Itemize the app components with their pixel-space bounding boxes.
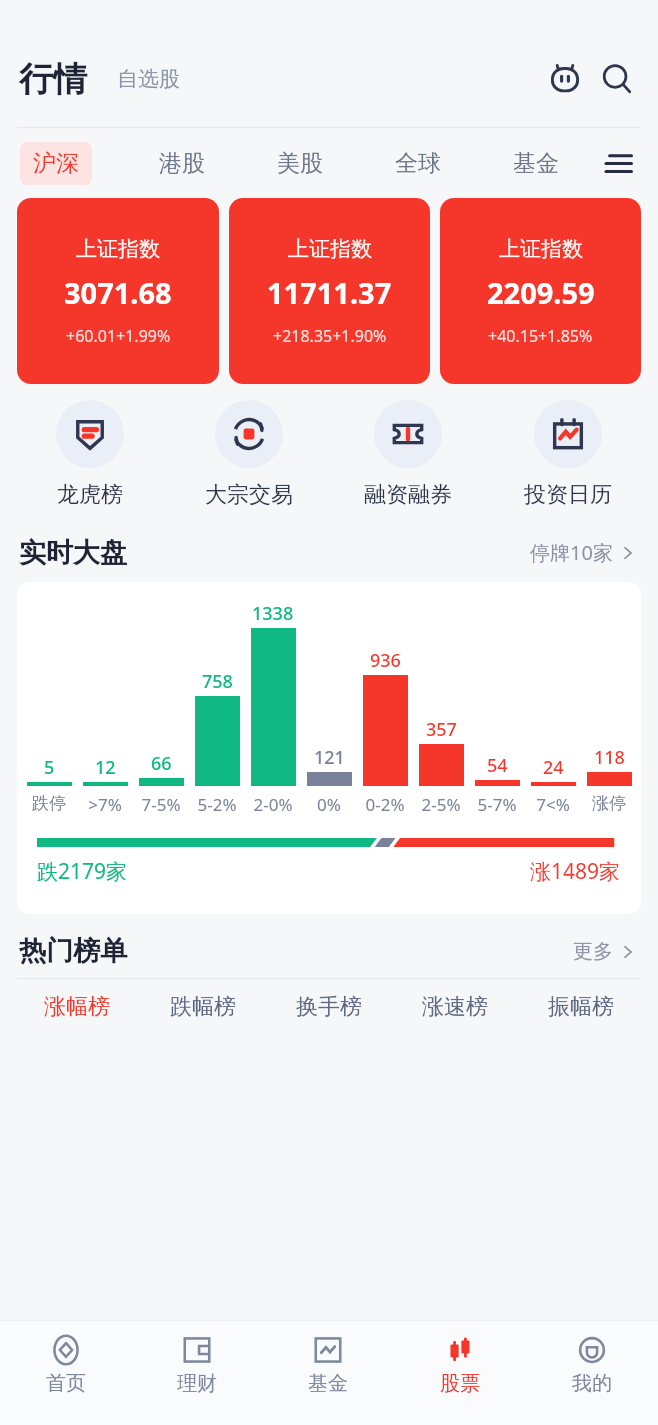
staticText: 跌2179家 [37,857,128,886]
button[interactable]: 停牌10家 [526,535,639,570]
staticText: 2-5% [413,793,469,816]
button[interactable]: 股票 [394,1321,526,1396]
button[interactable]: Search [595,57,639,101]
button[interactable]: 振幅榜 [518,993,644,1021]
staticText: 自选股 [117,66,180,92]
staticText: 港股 [159,149,205,178]
staticText: 大宗交易 [205,481,293,509]
button[interactable]: 首页 [0,1321,131,1396]
staticText: 跌停 [21,793,77,814]
button[interactable]: 5 [17,582,641,914]
staticText: 理财 [177,1371,217,1396]
button[interactable]: 沪深 [20,142,92,185]
staticText: 龙虎榜 [57,481,123,509]
staticText: 跌幅榜 [170,993,236,1021]
staticText: 股票 [440,1371,480,1396]
staticText: 5 [44,755,55,780]
staticText: 行情 [19,58,87,101]
button[interactable]: 更多 [569,935,639,968]
button[interactable]: 自选股 [113,62,184,96]
button[interactable]: 跌幅榜 [140,993,266,1021]
button[interactable]: 涨幅榜 [14,993,140,1021]
button[interactable]: 港股 [155,142,209,185]
staticText: 投资日历 [524,481,612,509]
staticText: 振幅榜 [548,993,614,1021]
button[interactable]: 涨速榜 [392,993,518,1021]
staticText: >7% [77,793,133,816]
staticText: 66 [151,751,172,776]
button[interactable]: 投资日历 [488,396,648,513]
staticText: 0% [301,793,357,816]
staticText: 上证指数 [499,236,583,262]
staticText: 11711.37 [267,273,392,312]
staticText: 5-7% [469,793,525,816]
button[interactable]: 全球 [391,142,445,185]
staticText: 5-2% [189,793,245,816]
staticText: 121 [314,745,345,770]
button[interactable]: 换手榜 [266,993,392,1021]
staticText: 2209.59 [487,273,595,312]
staticText: 更多 [573,939,613,964]
staticText: 全球 [395,149,441,178]
button[interactable]: 上证指数 [440,198,641,384]
staticText: 美股 [277,149,323,178]
button[interactable]: 大宗交易 [169,396,328,513]
staticText: +218.35+1.90% [273,325,387,347]
staticText: 沪深 [33,149,79,178]
button[interactable]: Menu [598,143,638,183]
staticText: 热门榜单 [19,934,127,968]
staticText: 上证指数 [76,236,160,262]
staticText: 24 [543,755,564,780]
staticText: 涨幅榜 [44,993,110,1021]
staticText: 基金 [308,1371,348,1396]
staticText: 上证指数 [288,236,372,262]
staticText: 7<% [525,793,581,816]
staticText: 12 [95,755,116,780]
staticText: 涨速榜 [422,993,488,1021]
staticText: 换手榜 [296,993,362,1021]
staticText: 首页 [46,1371,86,1396]
button[interactable]: 基金 [509,142,563,185]
button[interactable]: 理财 [131,1321,262,1396]
staticText: 118 [594,745,625,770]
staticText: 3071.68 [64,273,172,312]
staticText: 融资融券 [364,481,452,509]
staticText: 54 [487,753,508,778]
staticText: 1338 [252,601,294,626]
button[interactable]: 基金 [262,1321,394,1396]
button[interactable]: 我的 [526,1321,658,1396]
staticText: 涨1489家 [530,857,621,886]
staticText: 基金 [513,149,559,178]
staticText: 936 [370,648,401,673]
staticText: 7-5% [133,793,189,816]
staticText: +60.01+1.99% [66,325,171,347]
staticText: +40.15+1.85% [488,325,593,347]
button[interactable]: AI assistant [543,57,587,101]
staticText: 357 [426,717,457,742]
button[interactable]: 上证指数 [229,198,430,384]
button[interactable]: 上证指数 [17,198,219,384]
staticText: 涨停 [581,793,637,814]
button[interactable]: 龙虎榜 [10,396,169,513]
staticText: 我的 [572,1371,612,1396]
staticText: 实时大盘 [19,536,127,570]
button[interactable]: 融资融券 [328,396,488,513]
staticText: 0-2% [357,793,413,816]
staticText: 758 [202,669,233,694]
button[interactable]: 美股 [273,142,327,185]
staticText: 停牌10家 [530,539,613,566]
staticText: 2-0% [245,793,301,816]
